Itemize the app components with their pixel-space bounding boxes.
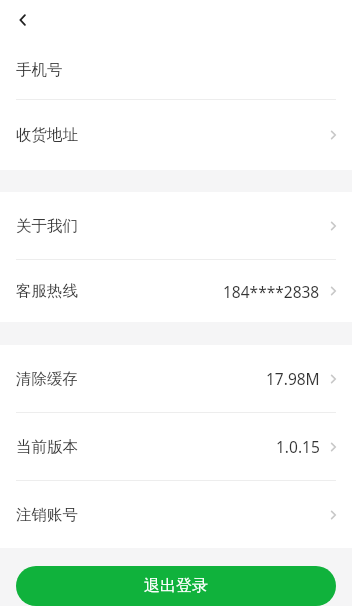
staticText: 清除缓存: [16, 369, 78, 389]
staticText: 注销账号: [16, 505, 78, 525]
button[interactable]: Back: [6, 3, 40, 37]
staticText: 客服热线: [16, 281, 78, 301]
button[interactable]: 手机号: [0, 40, 352, 99]
button[interactable]: 清除缓存: [0, 345, 352, 412]
staticText: 184****2838: [223, 281, 320, 302]
staticText: 收货地址: [16, 125, 78, 145]
staticText: 17.98M: [266, 368, 320, 389]
button[interactable]: 客服热线: [0, 260, 352, 322]
staticText: 手机号: [16, 60, 63, 80]
button[interactable]: 关于我们: [0, 192, 352, 259]
staticText: 关于我们: [16, 216, 78, 236]
button[interactable]: 当前版本: [0, 413, 352, 480]
button[interactable]: 退出登录: [16, 566, 336, 606]
button[interactable]: 注销账号: [0, 481, 352, 548]
staticText: 当前版本: [16, 437, 78, 457]
button[interactable]: 收货地址: [0, 100, 352, 170]
staticText: 退出登录: [144, 576, 208, 596]
staticText: 1.0.15: [276, 436, 320, 457]
